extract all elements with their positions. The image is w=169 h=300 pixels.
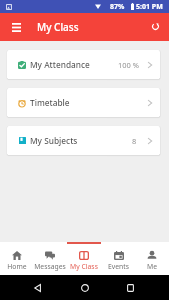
button[interactable]: Home [75,278,95,298]
button[interactable]: Events [101,242,135,275]
button[interactable]: Home [0,242,33,275]
staticText: 5:01 PM [136,2,163,12]
staticText: Events [108,262,129,271]
staticText: My Class [70,262,98,271]
staticText: Me [147,262,157,271]
staticText: My Subjects [30,135,78,146]
button[interactable]: My Attendance [7,50,160,79]
button[interactable]: Open navigation menu [3,14,29,40]
button[interactable]: Recent apps [120,278,140,298]
staticText: Home [7,262,27,271]
button[interactable]: My Subjects [7,126,160,155]
button[interactable]: Messages [33,242,67,275]
button[interactable]: Timetable [7,88,160,117]
staticText: 100 % [118,60,140,70]
button[interactable]: Refresh [145,16,165,36]
staticText: 87% [110,2,125,12]
button[interactable]: My Class [67,242,101,275]
staticText: 8 [132,136,137,146]
staticText: My Attendance [30,59,90,70]
staticText: Timetable [30,97,70,108]
button[interactable]: Back [27,278,47,298]
button[interactable]: Me [135,242,169,275]
staticText: My Class [37,20,79,34]
staticText: Messages [34,262,66,271]
